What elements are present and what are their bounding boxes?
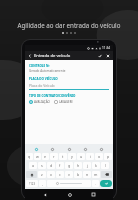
button[interactable]: m (92, 171, 100, 178)
button[interactable]: w (34, 153, 41, 160)
staticText: t (62, 154, 64, 159)
button[interactable]: , (39, 180, 46, 187)
button[interactable]: o (95, 153, 103, 160)
button[interactable]: z (38, 171, 46, 178)
staticText: r (53, 154, 55, 159)
button[interactable]: j (83, 162, 91, 169)
button[interactable]: Ferramenta do teclado (96, 146, 107, 152)
staticText: a (32, 163, 35, 168)
staticText: u (80, 154, 83, 159)
button[interactable]: i (86, 153, 94, 160)
staticText: x (50, 172, 52, 177)
staticText: m (94, 172, 98, 177)
staticText: n (86, 172, 89, 177)
staticText: TIPO DE CONTRATO/CONVÊNIO (29, 94, 76, 98)
staticText: p (107, 154, 110, 159)
button[interactable]: Ferramenta do teclado (31, 146, 42, 152)
staticText: Placa do Veículo (29, 83, 55, 88)
staticText: w (36, 154, 39, 159)
button[interactable]: . (92, 180, 99, 187)
button[interactable]: a (29, 162, 37, 169)
button[interactable]: g (65, 162, 73, 169)
button[interactable]: n (83, 171, 91, 178)
staticText: s (41, 163, 43, 168)
button[interactable]: Voltar (40, 190, 49, 199)
staticText: k (95, 163, 97, 168)
staticText: y (71, 154, 73, 159)
staticText: Gerado Automaticamente (29, 69, 66, 73)
staticText: o (98, 154, 101, 159)
button[interactable]: ?123 (26, 180, 38, 187)
button[interactable]: r (50, 153, 58, 160)
staticText: f (59, 163, 61, 168)
staticText: b (77, 172, 80, 177)
staticText: g (68, 163, 71, 168)
button[interactable]: x (47, 171, 55, 178)
button[interactable]: Cancelar (104, 52, 111, 59)
button[interactable]: LAVAGEM (54, 100, 73, 104)
staticText: q (28, 154, 31, 159)
button[interactable]: Enter (100, 180, 112, 187)
staticText: CONTROLE Nº (29, 64, 50, 68)
staticText: Agilidade ao dar entrada do veículo (8, 21, 130, 29)
staticText: c (59, 172, 61, 177)
staticText: e (44, 154, 47, 159)
button[interactable]: Recentes (89, 190, 98, 199)
button[interactable]: v (65, 171, 73, 178)
button[interactable]: Espaço (47, 180, 91, 187)
button[interactable]: c (56, 171, 64, 178)
button[interactable]: q (26, 153, 33, 160)
button[interactable]: p (104, 153, 112, 160)
staticText: z (41, 172, 43, 177)
button[interactable]: s (38, 162, 46, 169)
button[interactable]: k (92, 162, 100, 169)
button[interactable]: Tecla especial (26, 171, 37, 178)
button[interactable]: u (77, 153, 85, 160)
button[interactable]: d (47, 162, 55, 169)
staticText: AVALIAÇÃO (34, 100, 50, 104)
button[interactable]: Tecla especial (101, 171, 112, 178)
staticText: l (105, 163, 106, 168)
staticText: PLACA DO VEÍCULO (29, 77, 58, 81)
button[interactable]: Ferramenta do teclado (64, 146, 75, 152)
staticText: ?123 (29, 182, 36, 186)
staticText: i (90, 154, 91, 159)
staticText: LAVAGEM (59, 100, 73, 104)
staticText: . (95, 182, 96, 186)
button[interactable]: y (68, 153, 76, 160)
staticText: v (68, 172, 70, 177)
staticText: 11:34 (102, 46, 111, 50)
button[interactable]: AVALIAÇÃO (29, 100, 50, 104)
button[interactable]: h (74, 162, 82, 169)
button[interactable]: b (74, 171, 82, 178)
button[interactable]: Placa do Veículo (29, 83, 109, 90)
button[interactable]: Início (65, 190, 74, 199)
button[interactable]: Confirmar (96, 52, 103, 59)
staticText: j (87, 163, 88, 168)
button[interactable]: Ferramenta do teclado (47, 146, 58, 152)
staticText: , (42, 182, 43, 186)
button[interactable]: t (59, 153, 67, 160)
button[interactable]: Ferramenta do teclado (80, 146, 91, 152)
staticText: h (77, 163, 80, 168)
staticText: Entrada de veículo (34, 53, 96, 59)
button[interactable]: Voltar (27, 53, 33, 59)
button[interactable]: f (56, 162, 64, 169)
staticText: d (50, 163, 53, 168)
button[interactable]: l (101, 162, 109, 169)
button[interactable]: e (42, 153, 49, 160)
